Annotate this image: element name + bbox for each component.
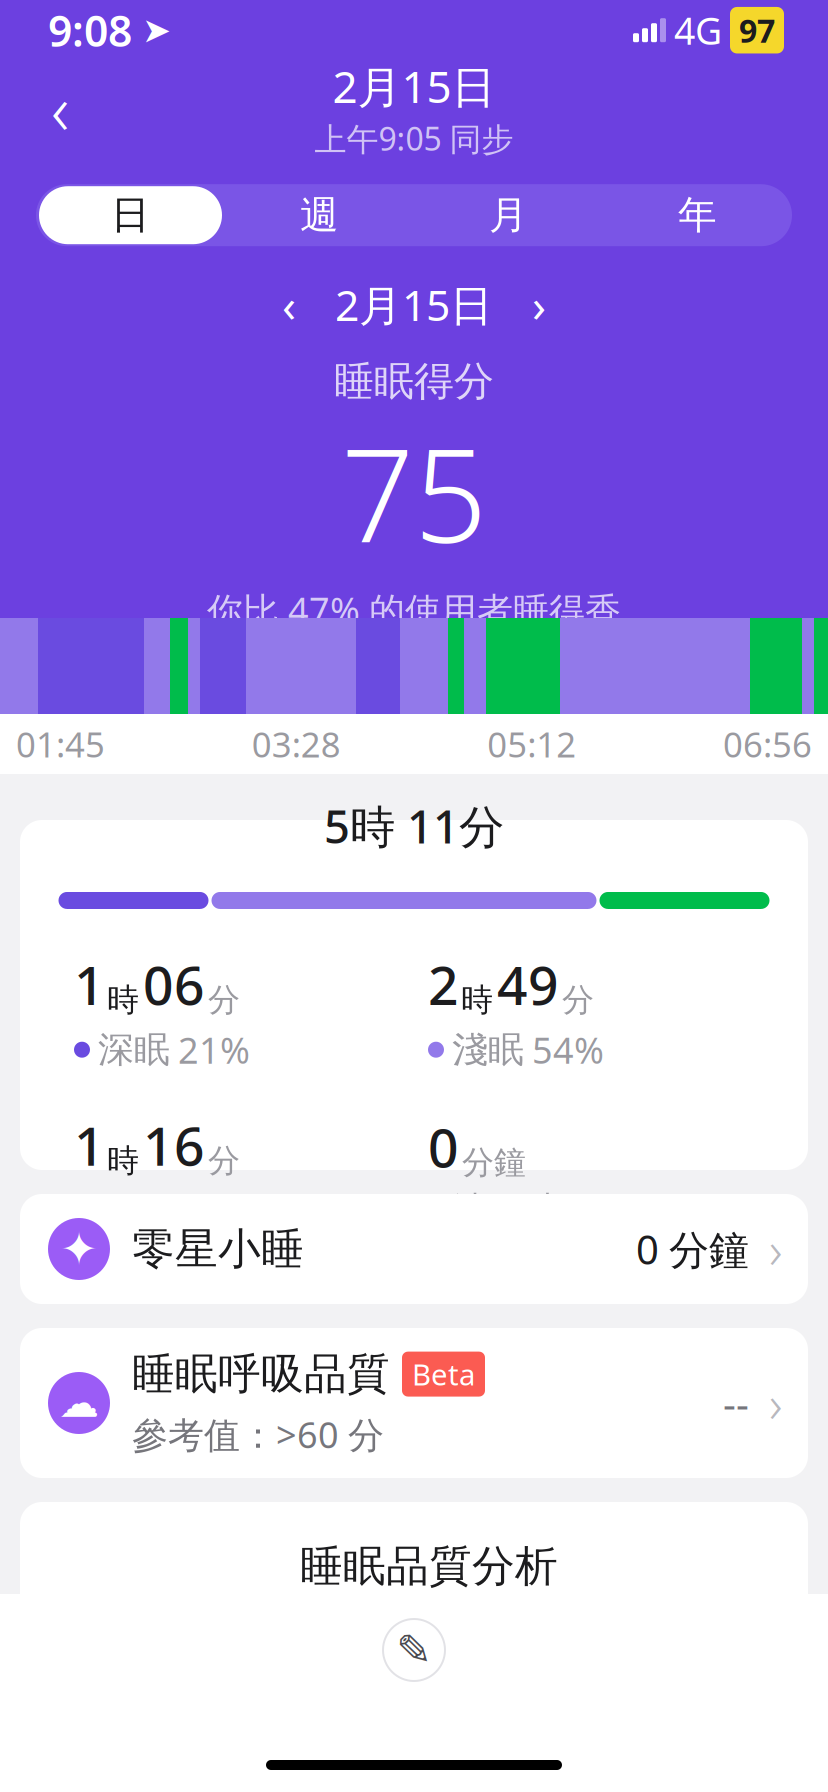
staticText: 深眠: [98, 1028, 170, 1072]
staticText: 25%: [215, 1186, 287, 1234]
staticText: 06:56: [723, 721, 812, 767]
staticText: Beta: [412, 1355, 475, 1394]
staticText: 21%: [178, 1026, 250, 1074]
staticText: 月: [489, 191, 528, 239]
button[interactable]: 月: [414, 184, 603, 246]
button[interactable]: ✦: [20, 1194, 808, 1304]
staticText: 01:45: [16, 721, 105, 767]
staticText: ✦: [60, 1223, 98, 1275]
staticText: ✎: [396, 1626, 432, 1674]
staticText: ›: [769, 1215, 782, 1283]
staticText: 週: [300, 191, 339, 239]
staticText: 零星小睡: [132, 1223, 304, 1275]
button[interactable]: 週: [225, 184, 414, 246]
staticText: 時: [107, 1141, 139, 1180]
staticText: 9:08: [48, 2, 132, 59]
staticText: 2: [428, 949, 459, 1020]
staticText: 2月15日: [335, 276, 493, 333]
staticText: 05:12: [487, 721, 576, 767]
button[interactable]: 日: [36, 184, 225, 246]
staticText: 清醒時間: [452, 1188, 596, 1232]
staticText: ›: [532, 274, 546, 335]
staticText: 0: [428, 1111, 459, 1182]
staticText: 5時 11分: [324, 796, 504, 856]
staticText: 分鐘: [462, 1143, 526, 1182]
staticText: 16: [143, 1110, 205, 1180]
staticText: 0 分鐘: [636, 1222, 749, 1275]
staticText: ›: [769, 1369, 782, 1437]
staticText: 時: [461, 980, 493, 1020]
staticText: 時: [107, 980, 139, 1020]
staticText: 75: [341, 408, 487, 578]
staticText: 1: [74, 949, 105, 1020]
staticText: ‹: [282, 274, 296, 335]
button[interactable]: 年: [603, 184, 792, 246]
staticText: ‹: [51, 62, 69, 154]
staticText: 你比 47% 的使用者睡得香: [207, 586, 621, 634]
staticText: 4G: [674, 5, 722, 55]
button[interactable]: ☁: [20, 1328, 808, 1478]
staticText: 睡眠品質分析: [300, 1540, 558, 1592]
staticText: ☁: [59, 1380, 99, 1426]
staticText: 睡眠呼吸品質: [132, 1348, 390, 1400]
staticText: 1: [74, 1110, 105, 1180]
staticText: --: [723, 1376, 749, 1429]
staticText: 淺眠: [452, 1028, 524, 1072]
staticText: 日: [111, 191, 150, 239]
staticText: 2月15日: [332, 57, 495, 115]
staticText: 睡眠得分: [334, 357, 494, 406]
button[interactable]: 後一天: [509, 276, 569, 332]
staticText: 06: [143, 949, 205, 1020]
button[interactable]: 前一天: [259, 276, 319, 332]
staticText: 分: [562, 980, 594, 1020]
staticText: 03:28: [252, 721, 341, 767]
staticText: 分: [208, 1141, 240, 1180]
staticText: 參考值：>60 分: [132, 1410, 384, 1458]
staticText: 97: [739, 9, 775, 51]
button[interactable]: 返回: [18, 66, 102, 150]
staticText: 54%: [532, 1026, 604, 1074]
button[interactable]: 編輯: [371, 1607, 457, 1693]
staticText: 分: [208, 980, 240, 1020]
staticText: 年: [678, 191, 717, 239]
staticText: 49: [497, 949, 559, 1020]
staticText: 上午9:05 同步: [314, 117, 513, 160]
staticText: REM: [98, 1186, 173, 1234]
staticText: ➤: [142, 10, 171, 50]
